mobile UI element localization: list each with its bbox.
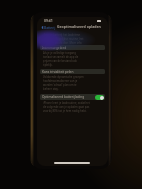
button[interactable]: Kans trivialiteit pelen: [40, 69, 105, 74]
staticText: Als je je volledige toegang: [43, 51, 76, 55]
staticText: 09:41: [44, 18, 53, 23]
staticText: hoofdmaximaliseren van je: [43, 79, 78, 83]
staticText: Leer je batterij het laadritme: [44, 33, 80, 37]
staticText: worden 'schaal' plan om te: [43, 83, 77, 87]
staticText: Kans trivialiteit pelen: [42, 70, 74, 74]
staticText: iPhone leert je laadroutine, zodat het: [43, 101, 90, 105]
staticText: Voldoende dynamische groepen: [43, 75, 84, 79]
button[interactable]: Interessegebied: [40, 45, 105, 50]
staticText: tijdelijk.: [43, 63, 53, 67]
staticText: Optimaliseerd batterijlading: [42, 95, 85, 99]
staticText: voorbij 80% tot je hem nodig hebt.: [43, 109, 87, 113]
staticText: Batterij: [44, 25, 56, 29]
staticText: toelaat verzamelt de app de: [43, 55, 79, 59]
staticText: Geoptimaliseerd opladen: [57, 24, 101, 29]
staticText: Interessegebied: [42, 46, 67, 50]
staticText: de volgende van je opladen gaat pas: [43, 105, 90, 109]
staticText: opladen wacht dan. Meer info: [44, 41, 82, 45]
staticText: prijzen van de bestand ook: [43, 59, 78, 63]
button[interactable]: Terug naar Batterij: [40, 24, 57, 30]
staticText: beheer stay.: [43, 87, 59, 91]
staticText: vanuit je dagelijkse routine, het: [44, 37, 84, 41]
button[interactable]: Optimaliseerd batterijlading: [40, 94, 105, 100]
